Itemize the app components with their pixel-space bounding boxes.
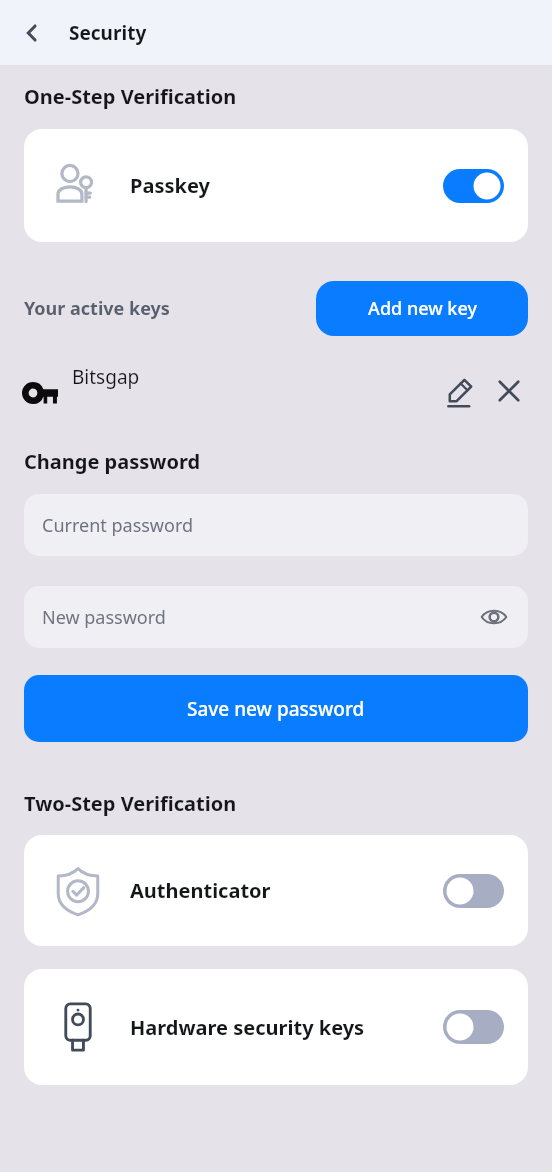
button[interactable]: New password [24,586,528,648]
staticText: Security [69,20,147,46]
staticText: Add new key [368,296,477,321]
button[interactable]: Authenticator [24,835,528,946]
staticText: Current password [42,513,194,538]
staticText: One-Step Verification [24,83,237,110]
button[interactable]: Passkey [24,129,528,242]
button[interactable]: Back [12,13,52,53]
button[interactable]: On [443,169,504,203]
staticText: Save new password [187,696,365,722]
button[interactable]: Bitsgap [0,356,552,420]
button[interactable]: Off [443,1010,504,1044]
button[interactable]: Show password [478,601,510,633]
button[interactable]: Off [443,874,504,908]
staticText: Two-Step Verification [24,790,237,817]
button[interactable]: Add new key [316,281,528,336]
staticText: Hardware security keys [130,1014,365,1041]
button[interactable]: Remove key [493,375,525,407]
staticText: Your active keys [24,296,170,321]
button[interactable]: Hardware security keys [24,969,528,1085]
button[interactable]: Current password [24,494,528,556]
button[interactable]: Edit key [444,374,478,408]
staticText: New password [42,605,166,630]
staticText: Change password [24,448,201,475]
staticText: Passkey [130,172,210,199]
staticText: Authenticator [130,877,271,904]
staticText: Bitsgap [72,364,140,390]
button[interactable]: Save new password [24,675,528,742]
